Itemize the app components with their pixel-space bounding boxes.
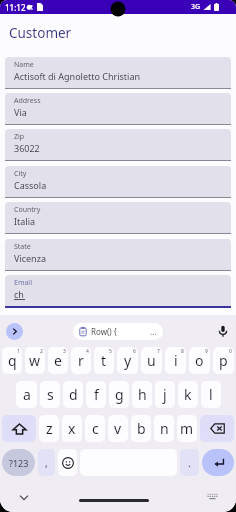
button[interactable]: Zip xyxy=(5,129,231,160)
staticText: v xyxy=(114,419,122,438)
button[interactable]: Country xyxy=(5,202,231,233)
staticText: Via xyxy=(14,106,27,118)
staticText: City xyxy=(14,169,27,179)
staticText: z xyxy=(46,419,53,438)
staticText: k xyxy=(184,385,192,404)
staticText: i xyxy=(174,351,178,370)
staticText: f xyxy=(94,385,99,404)
staticText: Address xyxy=(14,96,41,106)
button[interactable]: d xyxy=(63,381,83,408)
button[interactable]: c xyxy=(85,415,105,442)
button[interactable]: Backspace xyxy=(200,415,234,442)
staticText: 9 xyxy=(205,348,208,355)
button[interactable]: Shift xyxy=(2,415,36,442)
staticText: j xyxy=(163,385,167,404)
button[interactable]: p xyxy=(213,347,234,374)
staticText: 4 xyxy=(86,348,89,355)
staticText: 8 xyxy=(181,348,184,355)
staticText: 1 xyxy=(17,348,20,355)
button[interactable]: h xyxy=(132,381,152,408)
staticText: Vicenza xyxy=(14,252,46,264)
staticText: . xyxy=(188,456,191,470)
staticText: , xyxy=(45,456,48,470)
button[interactable]: s xyxy=(40,381,60,408)
staticText: 3 xyxy=(63,348,66,355)
button[interactable]: r xyxy=(71,347,91,374)
staticText: 5 xyxy=(109,348,112,355)
button[interactable]: City xyxy=(5,166,231,197)
button[interactable]: Emoji xyxy=(58,449,77,476)
staticText: 3G xyxy=(191,2,201,12)
staticText: s xyxy=(47,385,54,404)
button[interactable]: o xyxy=(189,347,210,374)
button[interactable]: . xyxy=(180,449,199,476)
staticText: n xyxy=(160,419,169,438)
button[interactable]: More suggestions xyxy=(6,323,23,340)
button[interactable]: y xyxy=(117,347,138,374)
staticText: h xyxy=(138,385,147,404)
staticText: l xyxy=(209,385,213,404)
staticText: Customer xyxy=(9,24,72,42)
staticText: Cassola xyxy=(14,179,47,191)
button[interactable]: Row() { xyxy=(73,323,163,340)
button[interactable]: f xyxy=(86,381,106,408)
staticText: p xyxy=(219,351,228,370)
staticText: Row() { xyxy=(91,326,117,337)
staticText: ... xyxy=(150,326,157,337)
button[interactable]: n xyxy=(154,415,174,442)
staticText: ?123 xyxy=(9,457,29,469)
button[interactable]: e xyxy=(48,347,68,374)
button[interactable]: b xyxy=(131,415,151,442)
staticText: r xyxy=(78,351,84,370)
staticText: q xyxy=(8,351,17,370)
staticText: ch xyxy=(14,288,24,300)
staticText: o xyxy=(195,351,204,370)
staticText: 36022 xyxy=(14,142,40,154)
staticText: d xyxy=(69,385,78,404)
staticText: Country xyxy=(14,205,41,215)
staticText: Actisoft di Agnoletto Christian xyxy=(14,70,141,82)
button[interactable]: i xyxy=(165,347,186,374)
staticText: 0 xyxy=(229,348,232,355)
button[interactable]: u xyxy=(141,347,162,374)
button[interactable]: Switch keyboard xyxy=(204,488,220,504)
button[interactable]: m xyxy=(177,415,197,442)
button[interactable]: j xyxy=(155,381,175,408)
staticText: Name xyxy=(14,60,34,70)
staticText: g xyxy=(115,385,124,404)
button[interactable]: Name xyxy=(5,57,231,88)
button[interactable]: State xyxy=(5,239,231,270)
staticText: Italia xyxy=(14,215,36,227)
button[interactable]: Hide keyboard xyxy=(16,489,32,505)
button[interactable]: w xyxy=(25,347,45,374)
staticText: c xyxy=(92,419,99,438)
button[interactable]: g xyxy=(109,381,129,408)
button[interactable]: k xyxy=(178,381,198,408)
button[interactable]: Address xyxy=(5,93,231,124)
button[interactable]: ?123 xyxy=(2,449,35,476)
button[interactable]: Email xyxy=(5,275,231,306)
staticText: x xyxy=(68,419,76,438)
staticText: 2 xyxy=(40,348,43,355)
button[interactable]: z xyxy=(39,415,59,442)
staticText: State xyxy=(14,242,31,252)
button[interactable]: x xyxy=(62,415,82,442)
button[interactable]: l xyxy=(201,381,221,408)
staticText: 11:12 xyxy=(5,2,26,13)
staticText: t xyxy=(101,351,107,370)
button[interactable]: Voice input xyxy=(215,323,231,339)
staticText: a xyxy=(23,385,31,404)
button[interactable]: t xyxy=(94,347,114,374)
staticText: 6 xyxy=(133,348,136,355)
staticText: m xyxy=(180,419,194,438)
staticText: Zip xyxy=(14,132,25,142)
button[interactable]: , xyxy=(38,449,55,476)
button[interactable]: Enter xyxy=(202,449,234,476)
staticText: e xyxy=(54,351,62,370)
staticText: u xyxy=(147,351,156,370)
button[interactable]: v xyxy=(108,415,128,442)
button[interactable]: q xyxy=(2,347,22,374)
button[interactable]: a xyxy=(16,381,37,408)
staticText: w xyxy=(29,351,41,370)
